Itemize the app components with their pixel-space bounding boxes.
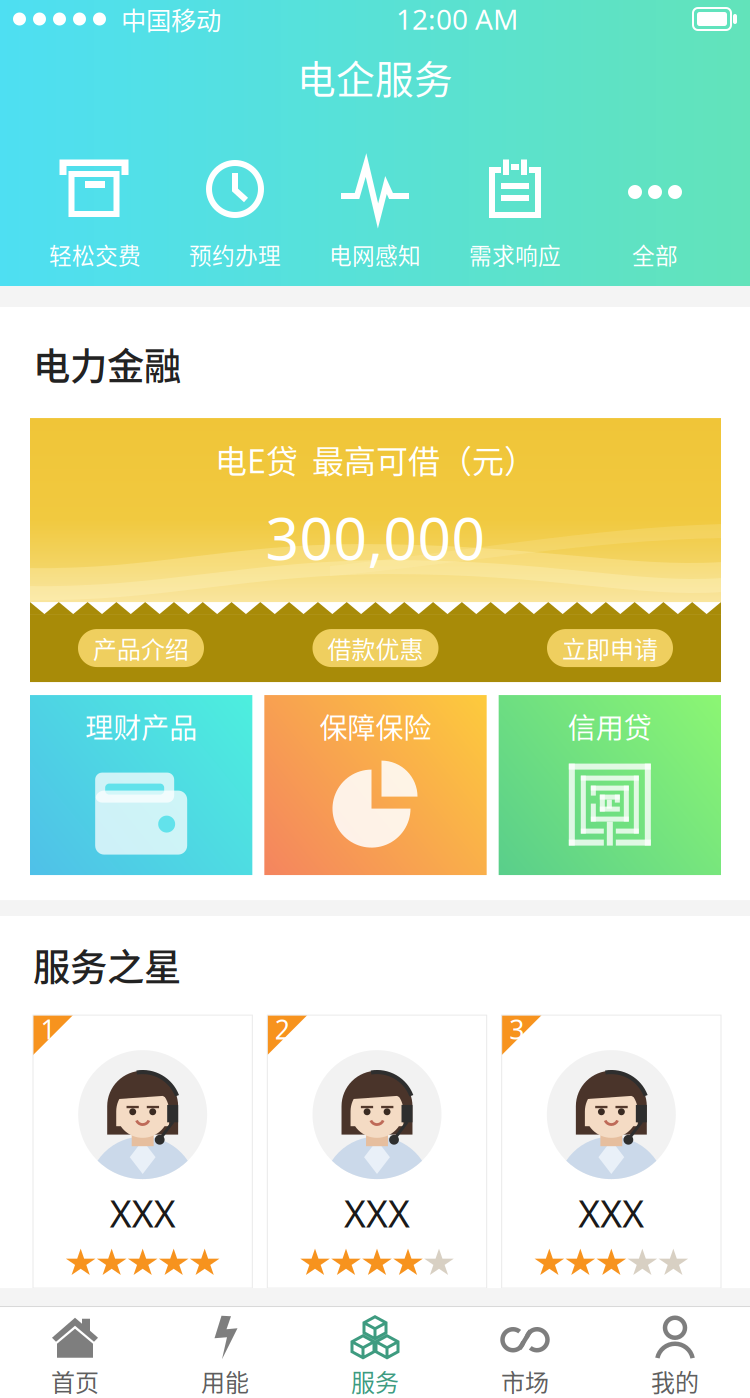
staticText: 电网感知 bbox=[329, 238, 421, 271]
staticText: 3 bbox=[509, 1011, 524, 1047]
button[interactable]: XXX bbox=[33, 1015, 252, 1288]
staticText: 预约办理 bbox=[189, 238, 281, 271]
button[interactable]: XXX bbox=[502, 1015, 721, 1288]
staticText: 理财产品 bbox=[85, 706, 197, 747]
staticText: 电企服务 bbox=[297, 49, 453, 105]
staticText: 立即申请 bbox=[562, 631, 658, 665]
button[interactable]: 轻松交费 bbox=[25, 159, 165, 271]
button[interactable]: 产品介绍 bbox=[78, 629, 204, 667]
button[interactable]: 首页 bbox=[0, 1307, 150, 1397]
button[interactable]: 保障保险 bbox=[264, 695, 487, 875]
staticText: 电力金融 bbox=[33, 337, 181, 391]
button[interactable]: 用能 bbox=[150, 1307, 300, 1397]
staticText: XXX bbox=[578, 1188, 644, 1238]
staticText: XXX bbox=[110, 1188, 176, 1238]
staticText: 信用贷 bbox=[568, 706, 652, 747]
button[interactable]: 信用贷 bbox=[499, 695, 721, 875]
button[interactable]: 全部 bbox=[585, 159, 725, 271]
button[interactable]: 市场 bbox=[450, 1307, 600, 1397]
button[interactable]: XXX bbox=[267, 1015, 487, 1288]
staticText: 300,000 bbox=[265, 498, 485, 576]
staticText: 保障保险 bbox=[319, 706, 431, 747]
button[interactable]: 需求响应 bbox=[445, 159, 585, 271]
staticText: 轻松交费 bbox=[49, 238, 141, 271]
staticText: 市场 bbox=[501, 1364, 549, 1398]
staticText: 服务之星 bbox=[33, 938, 181, 992]
button[interactable]: 我的 bbox=[600, 1307, 750, 1397]
staticText: 全部 bbox=[632, 238, 678, 271]
staticText: XXX bbox=[344, 1188, 410, 1238]
button[interactable]: 服务 bbox=[300, 1307, 450, 1397]
staticText: 用能 bbox=[201, 1364, 249, 1398]
staticText: 借款优惠 bbox=[327, 631, 423, 665]
staticText: 2 bbox=[275, 1011, 290, 1047]
staticText: 服务 bbox=[351, 1364, 399, 1398]
staticText: 需求响应 bbox=[469, 238, 561, 271]
button[interactable]: 预约办理 bbox=[165, 159, 305, 271]
staticText: 电E贷 最高可借（元） bbox=[215, 436, 536, 482]
staticText: 我的 bbox=[651, 1364, 699, 1398]
staticText: 产品介绍 bbox=[93, 631, 189, 665]
button[interactable]: 借款优惠 bbox=[312, 629, 438, 667]
staticText: 12:00 AM bbox=[396, 0, 518, 38]
button[interactable]: 电网感知 bbox=[305, 159, 445, 271]
staticText: 首页 bbox=[51, 1364, 99, 1398]
button[interactable]: 理财产品 bbox=[30, 695, 252, 875]
staticText: 中国移动 bbox=[121, 1, 221, 37]
button[interactable]: 立即申请 bbox=[547, 629, 673, 667]
staticText: 1 bbox=[40, 1011, 55, 1047]
